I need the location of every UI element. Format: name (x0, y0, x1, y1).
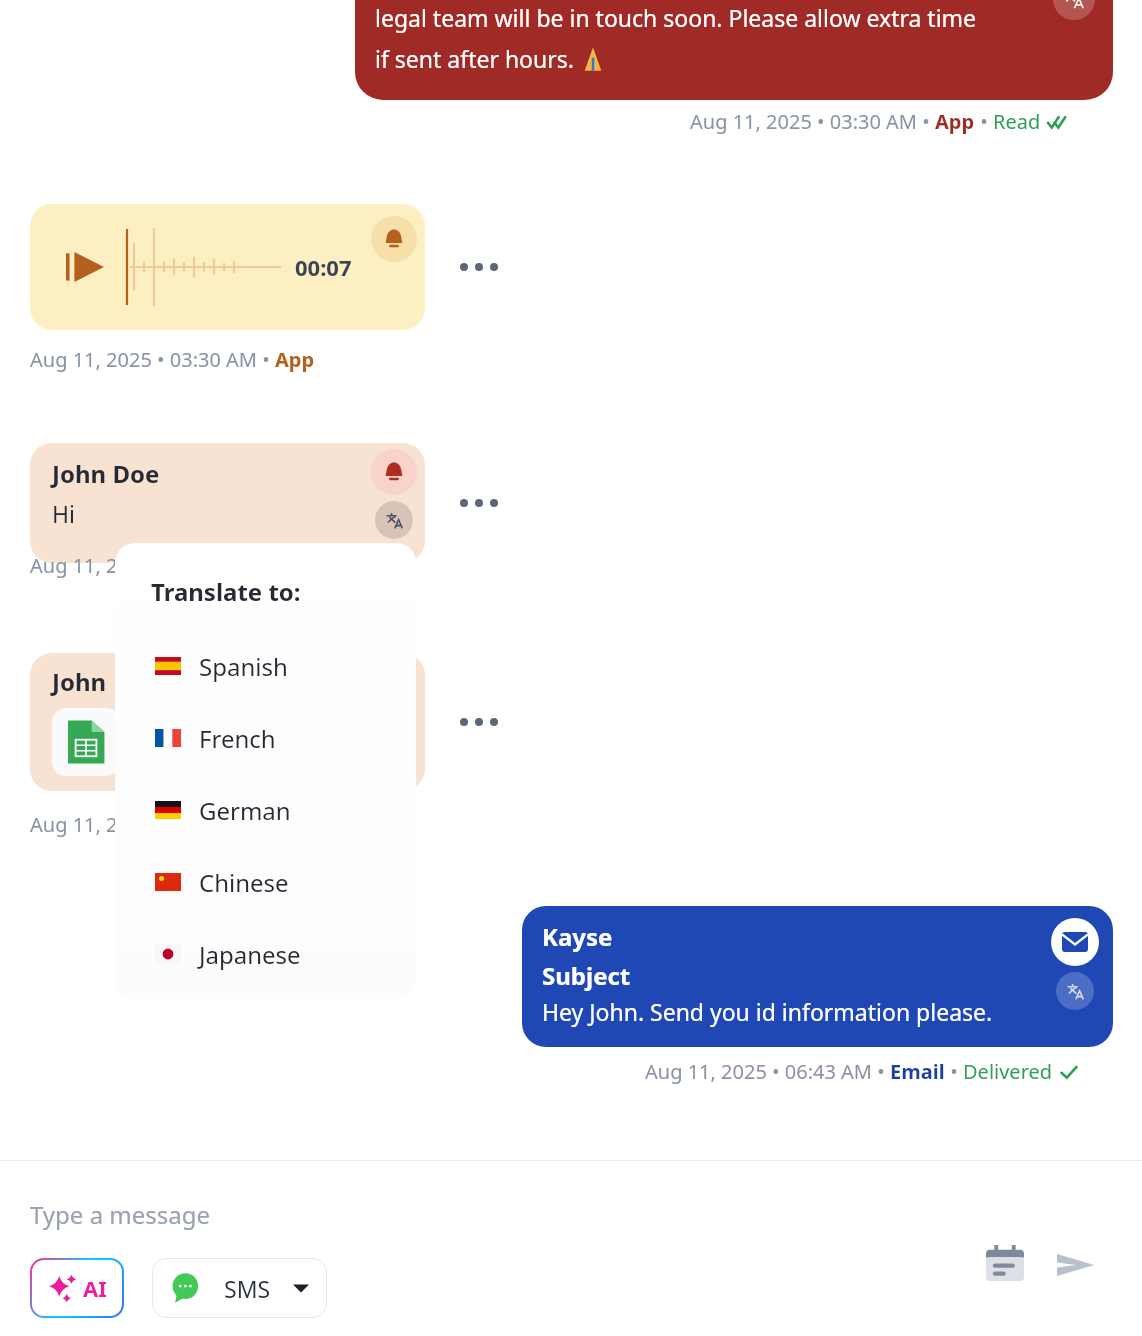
staticText: Aug 11, 2025 • 03:30 AM • (690, 108, 935, 135)
button[interactable]: SMS (170, 1258, 309, 1318)
staticText: Japanese (199, 938, 301, 971)
button[interactable]: Japanese (151, 918, 381, 990)
button[interactable]: John Doe (30, 443, 425, 563)
staticText: French (199, 722, 276, 755)
staticText: • (945, 1058, 963, 1085)
staticText: Translate to: (151, 575, 301, 608)
button[interactable]: German (151, 774, 381, 846)
staticText: John Doe (52, 457, 160, 490)
button[interactable]: More options (449, 702, 509, 742)
staticText: App (275, 346, 315, 373)
staticText: Subject (542, 959, 631, 992)
button[interactable]: More options (449, 483, 509, 523)
button[interactable]: Translate (1053, 0, 1095, 20)
button[interactable]: Spanish (151, 630, 381, 702)
staticText: Type a message (30, 1198, 211, 1231)
staticText: App (935, 108, 975, 135)
staticText: legal team will be in touch soon. Please… (375, 2, 977, 33)
button[interactable]: John (30, 653, 425, 791)
button[interactable]: Translate (375, 501, 413, 539)
staticText: Read (993, 108, 1041, 135)
button[interactable]: Schedule (978, 1238, 1032, 1292)
staticText: • (975, 108, 993, 135)
staticText: Aug 11, 2025 • 03:30 AM • (30, 346, 275, 373)
staticText: Email (890, 1058, 945, 1085)
button[interactable]: More options (449, 247, 509, 287)
button[interactable]: legal team will be in touch soon. Please… (355, 0, 1113, 100)
staticText: Aug 11, 2 (30, 552, 118, 579)
staticText: Aug 11, 2025 • 06:43 AM • (645, 1058, 890, 1085)
button[interactable]: Kayse (522, 906, 1113, 1047)
button[interactable]: Translate (1056, 972, 1094, 1010)
staticText: John (52, 665, 107, 698)
staticText: Aug 11, 2 (30, 811, 118, 838)
button[interactable] (52, 708, 120, 776)
button[interactable]: Reminder (371, 216, 417, 262)
staticText: Hey John. Send you id information please… (542, 996, 993, 1027)
button[interactable]: 00:07 (30, 204, 425, 330)
staticText: if sent after hours. (375, 43, 580, 74)
button[interactable]: Email (1051, 918, 1099, 966)
staticText: German (199, 794, 291, 827)
button[interactable]: AI (32, 1260, 122, 1316)
staticText: Kayse (542, 920, 613, 953)
button[interactable]: French (151, 702, 381, 774)
staticText: Hi (52, 498, 75, 529)
staticText: Spanish (199, 650, 288, 683)
staticText: AI (83, 1273, 107, 1303)
staticText: SMS (224, 1273, 271, 1304)
staticText: Chinese (199, 866, 289, 899)
staticText: 00:07 (295, 252, 352, 282)
button[interactable]: Reminder (371, 449, 417, 495)
staticText: Delivered (963, 1058, 1053, 1085)
button[interactable]: Chinese (151, 846, 381, 918)
button[interactable]: Send (1048, 1238, 1102, 1292)
